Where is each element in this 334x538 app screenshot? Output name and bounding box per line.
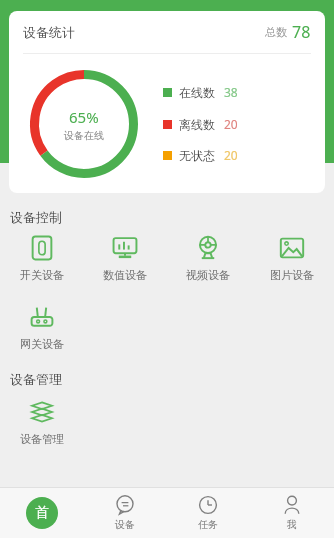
staticText: 离线数 bbox=[179, 117, 215, 132]
staticText: 78 bbox=[292, 21, 311, 43]
staticText: 在线数 bbox=[179, 85, 215, 100]
staticText: 设备管理 bbox=[20, 432, 64, 446]
button[interactable]: 我 bbox=[250, 488, 334, 538]
button[interactable]: 首 bbox=[0, 488, 83, 538]
staticText: 设备统计 bbox=[23, 24, 75, 40]
staticText: 数值设备 bbox=[103, 268, 147, 282]
staticText: 20 bbox=[224, 116, 238, 132]
staticText: 首 bbox=[35, 504, 49, 522]
staticText: 20 bbox=[224, 147, 238, 163]
button[interactable]: 数值设备 bbox=[83, 231, 166, 286]
staticText: 设备管理 bbox=[10, 371, 62, 387]
button[interactable]: 图片设备 bbox=[250, 231, 334, 286]
staticText: 任务 bbox=[198, 518, 218, 531]
button[interactable]: 视频设备 bbox=[166, 231, 250, 286]
staticText: 网关设备 bbox=[20, 337, 64, 351]
staticText: 38 bbox=[224, 84, 238, 100]
staticText: 设备在线 bbox=[64, 129, 104, 142]
button[interactable]: 设备 bbox=[83, 488, 166, 538]
staticText: 我 bbox=[287, 518, 297, 531]
staticText: 视频设备 bbox=[186, 268, 230, 282]
staticText: 65% bbox=[69, 107, 99, 127]
button[interactable]: 设备管理 bbox=[0, 395, 83, 450]
staticText: 总数 bbox=[265, 25, 287, 39]
button[interactable]: 任务 bbox=[166, 488, 250, 538]
staticText: 无状态 bbox=[179, 148, 215, 163]
staticText: 设备控制 bbox=[10, 209, 62, 225]
staticText: 开关设备 bbox=[20, 268, 64, 282]
button[interactable]: 开关设备 bbox=[0, 231, 83, 286]
staticText: 图片设备 bbox=[270, 268, 314, 282]
staticText: 设备 bbox=[115, 518, 135, 531]
button[interactable]: 网关设备 bbox=[0, 300, 83, 355]
